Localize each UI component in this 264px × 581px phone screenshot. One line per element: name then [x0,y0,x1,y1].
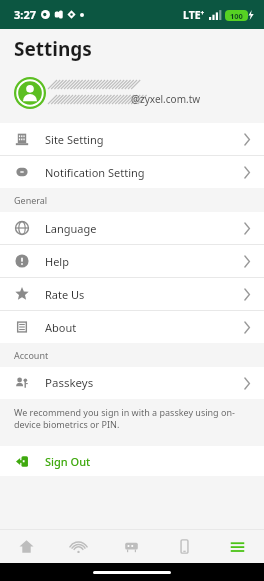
staticText: Settings [14,36,92,62]
staticText: @zyxel.com.tw [131,92,201,106]
button[interactable]: WiFi [52,530,105,563]
button[interactable]: Notification Setting [0,156,264,188]
staticText: Site Setting [45,132,244,147]
staticText: Language [45,221,244,236]
staticText: Passkeys [45,375,244,391]
staticText: About [45,320,244,335]
staticText: Account [14,349,49,361]
staticText: We recommend you sign in with a passkey … [14,406,248,431]
button[interactable]: Sign Out [0,446,264,476]
button[interactable]: Phone [158,530,211,563]
staticText: Sign Out [45,454,91,469]
staticText: 100 [230,11,243,21]
button[interactable]: Home [0,530,52,563]
staticText: 3:27 [14,7,36,22]
button[interactable]: Menu [211,530,264,563]
button[interactable]: Devices [105,530,158,563]
staticText: Notification Setting [45,165,244,180]
staticText: Help [45,254,244,269]
button[interactable]: Language [0,212,264,244]
button[interactable]: Passkeys [0,367,264,399]
button[interactable]: Rate Us [0,278,264,310]
staticText: LTE⁺ [183,8,205,22]
staticText: Rate Us [45,287,244,302]
button[interactable]: About [0,311,264,343]
staticText: General [14,194,48,206]
button[interactable]: Help [0,245,264,277]
button[interactable]: Site Setting [0,123,264,155]
